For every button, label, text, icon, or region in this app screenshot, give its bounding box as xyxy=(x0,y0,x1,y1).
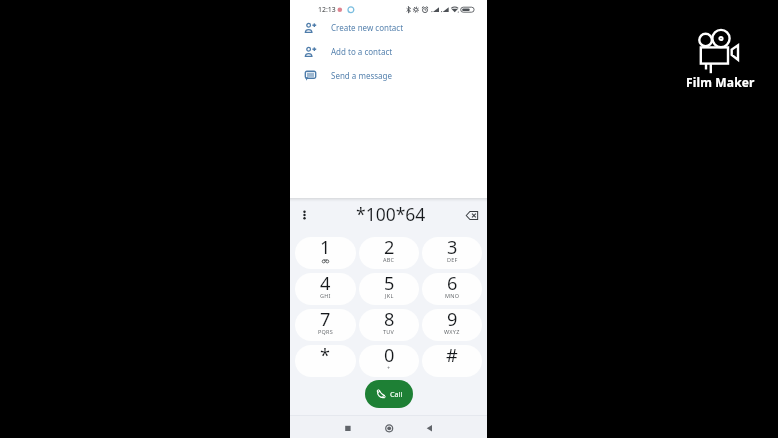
staticText: TUV xyxy=(383,328,395,335)
button[interactable]: 4 xyxy=(295,273,356,305)
staticText: 7 xyxy=(320,309,331,332)
staticText: Add to a contact xyxy=(331,46,393,57)
staticText: Film Maker xyxy=(686,74,755,90)
staticText: * xyxy=(320,345,331,368)
button[interactable]: 1 xyxy=(295,237,356,269)
button[interactable]: Add to a contact xyxy=(290,41,487,65)
staticText: WXYZ xyxy=(444,328,460,335)
staticText: *100*64 xyxy=(356,202,426,226)
staticText: 5 xyxy=(384,273,395,296)
staticText: 6 xyxy=(447,273,458,296)
staticText: JKL xyxy=(385,292,394,299)
button[interactable]: 2 xyxy=(359,237,419,269)
staticText: 4 xyxy=(320,273,331,296)
staticText: 12:13 xyxy=(318,5,336,14)
staticText: DEF xyxy=(447,256,458,263)
staticText: 8 xyxy=(384,309,395,332)
staticText: ABC xyxy=(383,256,395,263)
button[interactable]: * xyxy=(295,345,356,377)
staticText: Create new contact xyxy=(331,22,404,33)
button[interactable]: More options xyxy=(296,207,312,223)
staticText: 9 xyxy=(447,309,458,332)
staticText: Call xyxy=(390,389,403,399)
staticText: Send a message xyxy=(331,70,392,81)
button[interactable]: 7 xyxy=(295,309,356,341)
staticText: + xyxy=(387,364,391,371)
button[interactable]: Call xyxy=(365,380,413,408)
button[interactable]: # xyxy=(422,345,482,377)
button[interactable]: Backspace xyxy=(464,207,480,223)
button[interactable]: 8 xyxy=(359,309,419,341)
staticText: 2 xyxy=(384,237,395,260)
button[interactable]: Send a message xyxy=(290,65,487,89)
staticText: GHI xyxy=(320,292,331,299)
staticText: 0 xyxy=(384,345,395,368)
button[interactable]: 6 xyxy=(422,273,482,305)
button[interactable]: 0 xyxy=(359,345,419,377)
button[interactable]: 3 xyxy=(422,237,482,269)
staticText: 3 xyxy=(447,237,458,260)
staticText: 1 xyxy=(320,237,331,260)
staticText: # xyxy=(446,345,458,368)
staticText: MNO xyxy=(445,292,460,299)
staticText: PQRS xyxy=(318,328,334,335)
button[interactable]: Create new contact xyxy=(290,17,487,41)
button[interactable]: 5 xyxy=(359,273,419,305)
button[interactable]: 9 xyxy=(422,309,482,341)
